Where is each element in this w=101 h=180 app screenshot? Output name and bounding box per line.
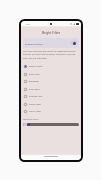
staticText: Warm light	[29, 110, 41, 113]
staticText: Backlight	[29, 80, 39, 83]
button[interactable]: Warm light	[23, 108, 79, 115]
button[interactable]	[23, 121, 79, 127]
staticText: Intensity level	[23, 117, 39, 120]
staticText: Bright Paper	[29, 65, 43, 68]
button[interactable]: Green light	[23, 101, 79, 108]
staticText: Bright Filter	[42, 31, 61, 35]
staticText: 9:41	[26, 23, 31, 26]
staticText: Orange light	[29, 95, 43, 98]
button[interactable]: Gray light	[23, 86, 79, 93]
staticText: Blue Light	[29, 73, 40, 76]
button[interactable]: Bright Paper	[23, 63, 79, 70]
staticText: This tool reduces eye strain by adapting…	[23, 49, 79, 60]
staticText: Gray light	[29, 88, 40, 91]
button[interactable]: Blue Light	[23, 71, 79, 78]
staticText: Green light	[29, 103, 42, 106]
button[interactable]: Enable Feature	[23, 38, 79, 48]
button[interactable]: Backlight	[23, 78, 79, 85]
staticText: Enable Feature	[25, 42, 43, 45]
button[interactable]: Orange light	[23, 93, 79, 100]
